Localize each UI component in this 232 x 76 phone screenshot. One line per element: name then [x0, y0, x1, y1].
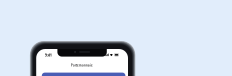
- staticText: Portemonnaie: [71, 64, 93, 67]
- button[interactable]: Karte: [36, 73, 128, 76]
- staticText: 9:41: [45, 52, 52, 57]
